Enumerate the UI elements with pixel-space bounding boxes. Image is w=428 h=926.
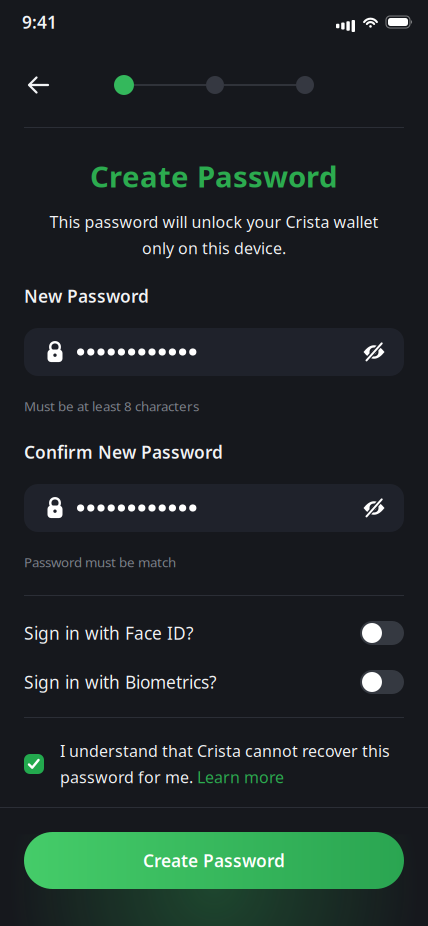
staticText: 9:41 [22,10,57,33]
button[interactable]: I understand that Crista cannot recover … [24,754,44,774]
staticText: Sign in with Biometrics? [24,670,217,693]
button[interactable]: Show password [363,499,404,517]
button[interactable]: Sign in with Biometrics [0,670,428,694]
staticText: Create Password [90,156,338,195]
staticText: Learn more [197,766,284,788]
staticText: Confirm New Password [24,440,223,463]
button[interactable]: Create Password [24,832,404,889]
staticText: I understand that Crista cannot recover … [60,740,390,761]
staticText: Password must be match [24,553,176,571]
button[interactable]: Show password [363,343,404,361]
staticText: Sign in with Face ID? [24,621,194,644]
button[interactable]: Learn more [197,766,284,788]
staticText: Create Password [143,849,285,872]
staticText: This password will unlock your Crista wa… [49,211,378,232]
staticText: only on this device. [142,237,286,259]
staticText: New Password [24,284,149,307]
button[interactable]: Back [0,76,49,94]
button[interactable]: Sign in with Face ID [0,621,428,645]
staticText: password for me. [60,766,197,788]
staticText: Must be at least 8 characters [24,397,199,415]
